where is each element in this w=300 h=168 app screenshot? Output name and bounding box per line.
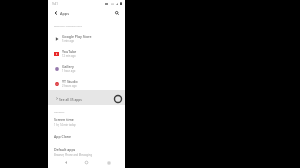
staticText: 5 min ago (62, 39, 75, 43)
staticText: App Clone (54, 134, 72, 139)
button[interactable]: Back (61, 158, 70, 167)
staticText: YouTube (62, 49, 77, 54)
staticText: GENERAL (54, 111, 65, 114)
staticText: 9:41 (52, 2, 58, 6)
button[interactable]: Back (52, 9, 60, 17)
button[interactable]: App Clone (48, 134, 125, 143)
staticText: See all 35 apps (59, 97, 82, 101)
staticText: Gallery (62, 64, 74, 69)
button[interactable]: Default apps (48, 147, 125, 158)
button[interactable]: YT Studio (48, 76, 125, 90)
button[interactable]: YouTube (48, 46, 125, 60)
staticText: 1 hour ago (62, 69, 76, 73)
button[interactable]: Screen time (48, 117, 125, 128)
button[interactable]: See all 35 apps (48, 90, 125, 105)
staticText: Google Play Store (62, 34, 92, 39)
staticText: 12 min ago (62, 54, 76, 58)
button[interactable]: Home (82, 158, 91, 167)
button[interactable]: Search (113, 9, 121, 17)
button[interactable]: Recents (104, 158, 113, 167)
button[interactable]: Gallery (48, 61, 125, 75)
staticText: 2 hours ago (62, 84, 77, 88)
staticText: RECENTLY OPENED APPS (54, 25, 83, 28)
staticText: Apps (60, 11, 70, 16)
staticText: YT Studio (62, 79, 78, 84)
button[interactable]: Google Play Store (48, 31, 125, 45)
staticText: 1 hr, 14 min today (54, 123, 76, 127)
staticText: Screen time (54, 117, 74, 122)
staticText: Default apps (54, 147, 76, 152)
staticText: Browser, Phone and Messaging (54, 153, 93, 157)
